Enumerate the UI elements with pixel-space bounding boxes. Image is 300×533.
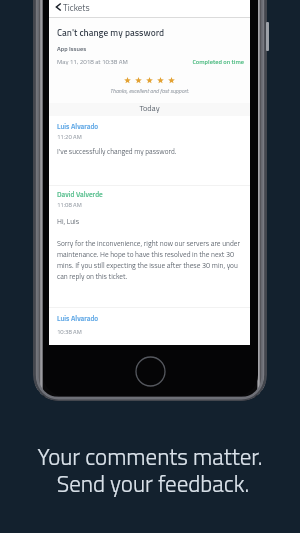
staticText: Completed on time: [49, 57, 244, 67]
staticText: Send your feedback.: [3, 466, 300, 501]
staticText: 11:08 AM: [57, 200, 82, 209]
button[interactable]: Back: [49, 0, 250, 17]
staticText: 11:20 AM: [57, 132, 82, 141]
staticText: Thanks, excellent and fast support.: [49, 86, 250, 95]
staticText: Your comments matter.: [0, 439, 300, 474]
staticText: David Valverde: [57, 189, 103, 200]
staticText: App Issues: [57, 44, 87, 54]
other: Back: [56, 3, 61, 11]
staticText: Today: [49, 102, 250, 114]
staticText: Luis Alvarado: [57, 121, 99, 132]
staticText: I've successfully changed my password.: [57, 146, 177, 157]
staticText: Tickets: [63, 1, 90, 15]
staticText: Hi, Luis: [57, 216, 80, 227]
staticText: 10:38 AM: [57, 327, 82, 336]
staticText: Luis Alvarado: [57, 313, 99, 324]
staticText: May 11, 2018 at 10:38 AM: [57, 57, 128, 67]
staticText: Sorry for the inconvenience, right now o…: [57, 238, 244, 282]
staticText: Can't change my password: [57, 25, 165, 39]
